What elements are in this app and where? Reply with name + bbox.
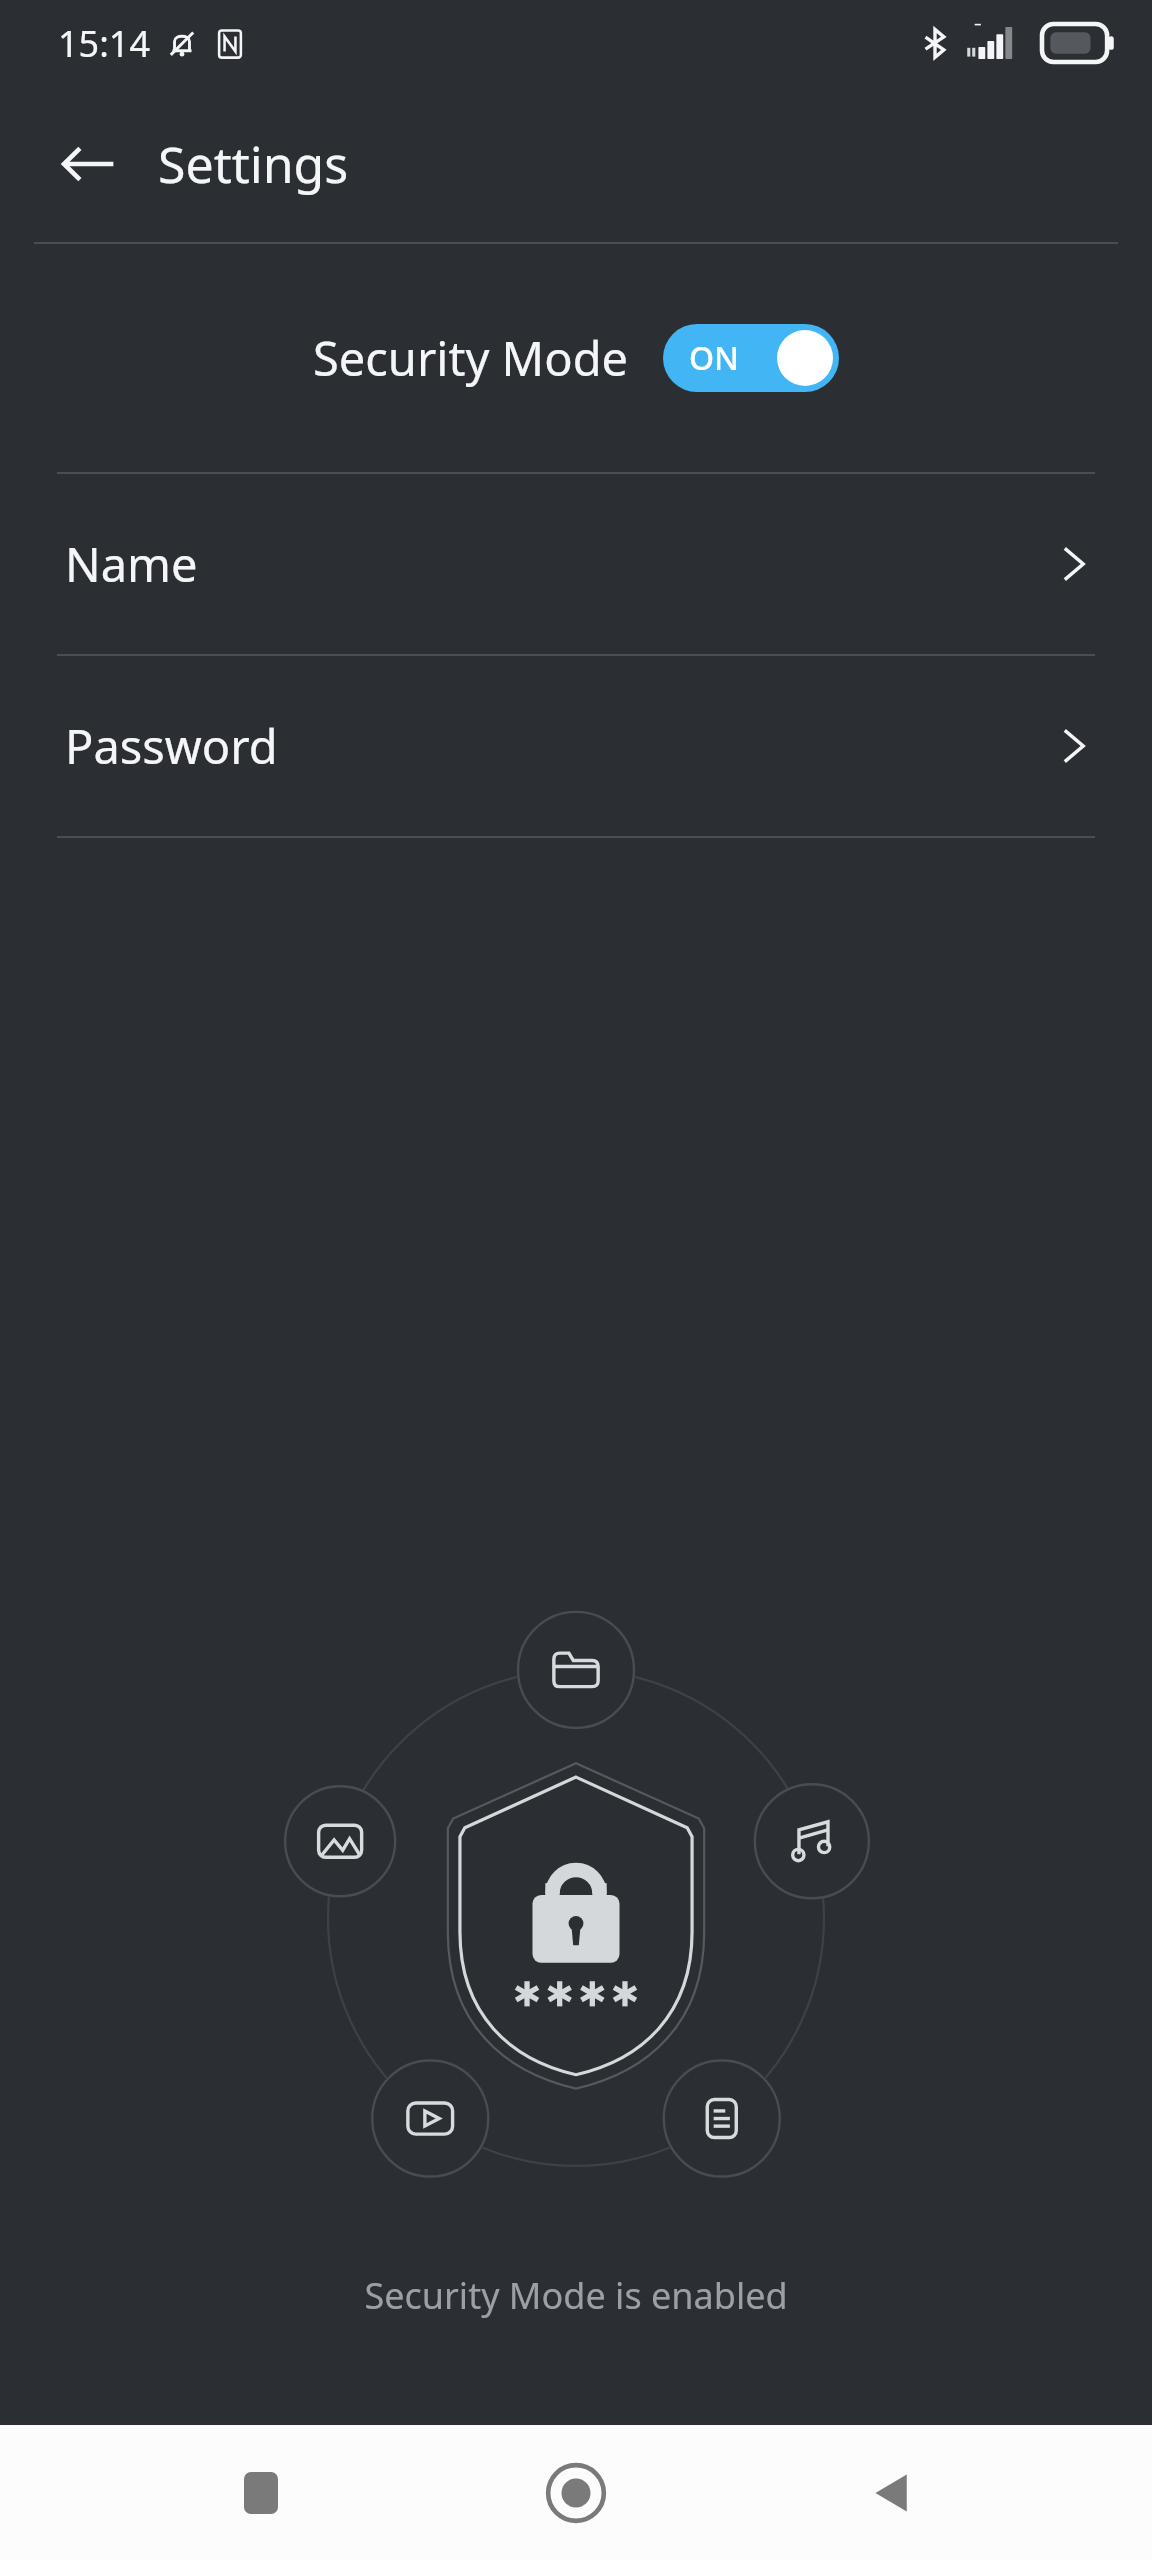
button[interactable]: Recent apps: [206, 2438, 316, 2548]
staticText: ON: [689, 336, 739, 380]
staticText: Password: [65, 714, 278, 778]
staticText: Security Mode: [313, 326, 629, 390]
button[interactable]: Security Mode toggle, on: [663, 324, 839, 392]
button[interactable]: Name: [0, 474, 1152, 654]
button[interactable]: Back: [46, 122, 130, 206]
staticText: Security Mode is enabled: [0, 2271, 1152, 2320]
button[interactable]: Home: [521, 2438, 631, 2548]
staticText: Name: [65, 532, 198, 596]
staticText: 15:14: [58, 19, 151, 68]
button[interactable]: Security Mode: [0, 244, 1152, 472]
button[interactable]: Password: [0, 656, 1152, 836]
staticText: Settings: [158, 130, 349, 198]
button[interactable]: Back: [837, 2438, 947, 2548]
